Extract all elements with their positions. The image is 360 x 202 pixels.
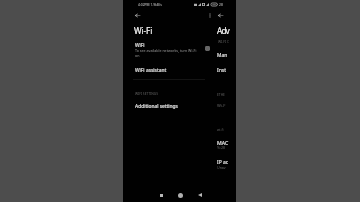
button[interactable]: MAC — [212, 136, 236, 152]
staticText: 4:02PM 1.9kB/s — [138, 2, 162, 6]
button[interactable]: Inst — [212, 64, 236, 76]
button[interactable]: Back — [190, 188, 209, 202]
staticText: wi-fi — [217, 127, 224, 131]
button[interactable]: Additional settings — [123, 100, 236, 112]
button[interactable]: Back — [129, 9, 145, 21]
staticText: Additional settings — [135, 103, 178, 110]
staticText: Man — [217, 52, 228, 59]
button[interactable]: IP ac — [212, 156, 236, 172]
staticText: Unav — [217, 165, 226, 170]
button[interactable]: Recents — [151, 188, 171, 202]
button[interactable]: More options — [204, 9, 215, 21]
staticText: Adv — [217, 25, 229, 36]
staticText: Wi-F — [217, 103, 226, 109]
staticText: MAC — [217, 139, 229, 146]
staticText: Inst — [217, 67, 227, 74]
staticText: IP ac — [217, 159, 228, 166]
button[interactable]: Back — [213, 9, 227, 21]
staticText: WIFI SETTINGS — [135, 91, 159, 95]
staticText: Wi-Fi — [134, 25, 153, 36]
button[interactable]: WiFi — [123, 40, 212, 60]
staticText: 28 — [219, 2, 223, 6]
staticText: To see available networks, turn Wi-Fi on — [135, 48, 198, 58]
staticText: WiFi assistant — [135, 67, 167, 74]
staticText: WiFi — [135, 42, 145, 49]
button[interactable]: Wi-F — [212, 100, 236, 112]
button[interactable]: WiFi assistant — [123, 64, 236, 76]
button[interactable]: Man — [212, 49, 236, 61]
button[interactable]: Home — [171, 188, 190, 202]
staticText: ETHE — [217, 92, 225, 96]
staticText: WI-FI C — [218, 39, 230, 43]
staticText: %:28 — [217, 145, 226, 150]
